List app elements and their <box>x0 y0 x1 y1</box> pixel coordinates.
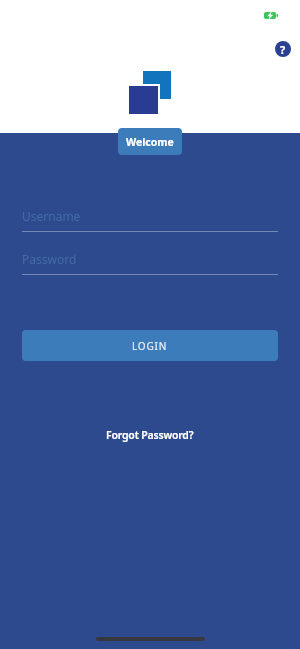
staticText: Forgot Password? <box>106 428 194 442</box>
staticText: LOGIN <box>132 339 168 353</box>
staticText: Welcome <box>126 135 174 149</box>
button[interactable]: LOGIN <box>22 330 278 361</box>
staticText: Username <box>22 208 81 224</box>
button[interactable]: ? <box>275 41 291 57</box>
staticText: Password <box>22 251 77 267</box>
button[interactable]: Welcome <box>118 128 182 155</box>
button[interactable]: Forgot Password? <box>0 426 300 444</box>
staticText: ? <box>280 42 286 57</box>
